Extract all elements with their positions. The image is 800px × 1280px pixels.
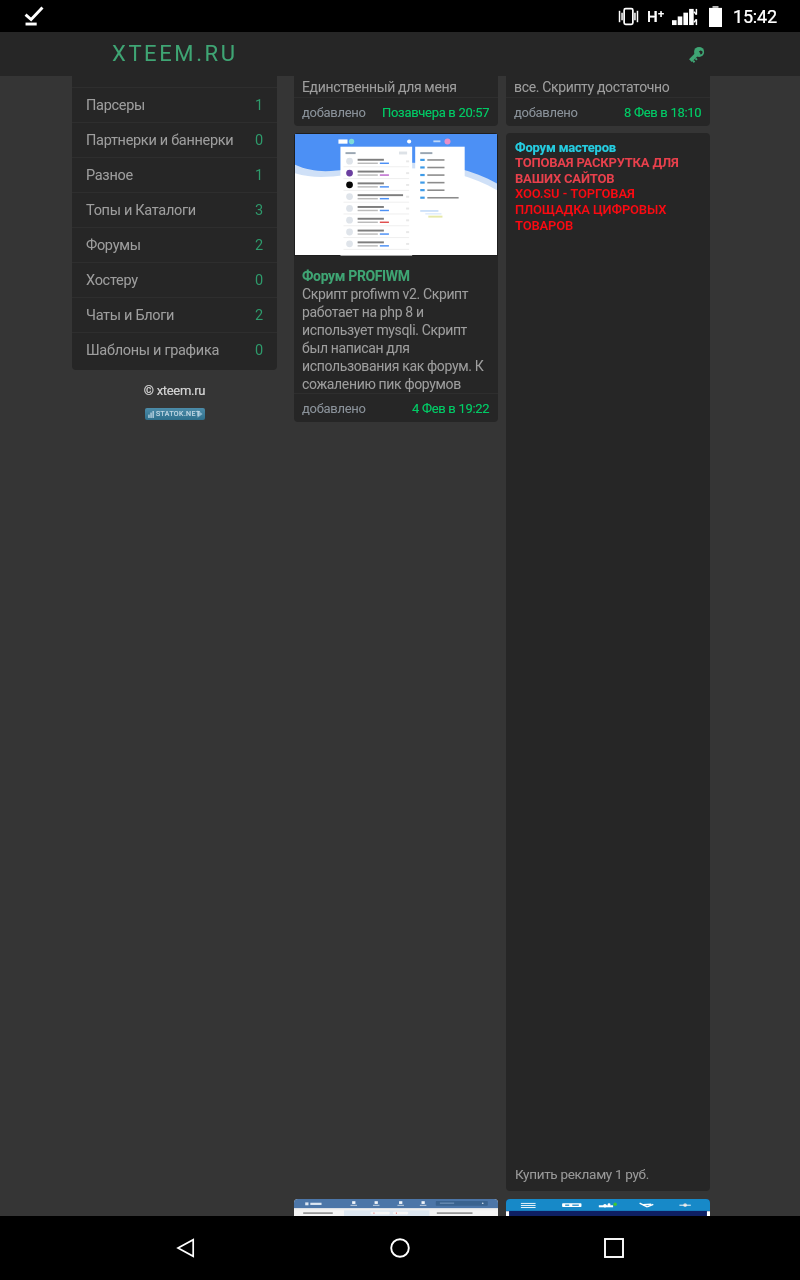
- staticText: Позавчера в 20:57: [382, 105, 490, 120]
- staticText: 2: [255, 307, 263, 324]
- staticText: добавлено: [302, 105, 366, 120]
- button[interactable]: Шаблоны и графика: [72, 333, 277, 367]
- button[interactable]: Форум мастеров: [506, 133, 710, 1191]
- staticText: 8 Фев в 18:10: [624, 105, 702, 120]
- staticText: 1: [255, 97, 263, 114]
- button[interactable]: Партнерки и баннерки: [72, 123, 277, 157]
- button[interactable]: Хостеру: [72, 263, 277, 297]
- staticText: Разное: [86, 167, 255, 184]
- button[interactable]: Login: [676, 34, 716, 74]
- staticText: Форум PROFIWM: [302, 268, 410, 284]
- staticText: 0: [255, 272, 263, 289]
- staticText: Шаблоны и графика: [86, 342, 255, 359]
- staticText: Чаты и Блоги: [86, 307, 255, 324]
- staticText: Форум мастеров: [515, 140, 616, 155]
- button[interactable]: Топы и Каталоги: [72, 193, 277, 227]
- staticText: H: [647, 8, 658, 26]
- button[interactable]: Back: [158, 1220, 214, 1276]
- staticText: Форумы: [86, 237, 255, 254]
- button[interactable]: Recent apps: [586, 1220, 642, 1276]
- button[interactable]: XTEEM.RU: [72, 32, 277, 76]
- staticText: 3: [255, 202, 263, 219]
- staticText: 2: [255, 237, 263, 254]
- staticText: Купить рекламу 1 руб.: [515, 1166, 650, 1182]
- staticText: XOO.SU - ТОРГОВАЯ ПЛОЩАДКА ЦИФРОВЫХ ТОВА…: [515, 186, 701, 233]
- button[interactable]: Home: [372, 1220, 428, 1276]
- staticText: +: [658, 8, 665, 21]
- button[interactable]: Парсеры: [72, 88, 277, 122]
- staticText: 4 Фев в 19:22: [412, 401, 490, 416]
- staticText: добавлено: [302, 401, 366, 416]
- staticText: все. Скрипту достаточно: [514, 79, 670, 95]
- staticText: © xteem.ru: [72, 383, 277, 398]
- staticText: XTEEM.RU: [112, 41, 238, 67]
- button[interactable]: Разное: [72, 158, 277, 192]
- staticText: 0: [255, 342, 263, 359]
- staticText: Единственный для меня: [302, 79, 457, 95]
- staticText: 15:42: [733, 6, 777, 27]
- staticText: Парсеры: [86, 97, 255, 114]
- staticText: ТОПОВАЯ РАСКРУТКА ДЛЯ ВАШИХ САЙТОВ: [515, 155, 701, 186]
- staticText: 0: [255, 132, 263, 149]
- button[interactable]: Форум PROFIWM: [294, 133, 498, 422]
- staticText: Топы и Каталоги: [86, 202, 255, 219]
- staticText: добавлено: [514, 105, 578, 120]
- button[interactable]: statok.net counter: [145, 408, 205, 420]
- button[interactable]: Форумы: [72, 228, 277, 262]
- button[interactable]: на хостинге есть php и mysql и это: [506, 76, 710, 126]
- staticText: Хостеру: [86, 272, 255, 289]
- button[interactable]: Чаты и Блоги: [72, 298, 277, 332]
- staticText: STATOK.NET: [156, 410, 201, 418]
- staticText: Партнерки и баннерки: [86, 132, 255, 149]
- button[interactable]: возможности, и это не может не радовать.: [294, 76, 498, 126]
- staticText: Скрипт profiwm v2. Скрипт работает на ph…: [302, 286, 490, 393]
- staticText: 1: [255, 167, 263, 184]
